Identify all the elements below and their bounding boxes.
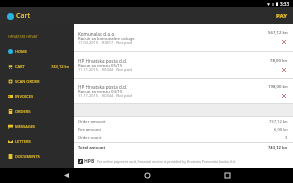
- button[interactable]: PAY: [270, 8, 293, 24]
- button[interactable]: HOME: [0, 44, 74, 59]
- button[interactable]: HP Hrvatska posta d.d.: [74, 52, 293, 78]
- staticText: 567,12 kn: [268, 29, 288, 35]
- staticText: 6,00 kn: [274, 127, 288, 133]
- staticText: INVOICES: [15, 94, 34, 99]
- staticText: 78,00 kn: [270, 57, 288, 63]
- staticText: 17.03.2015. R3617 Not paid: [78, 40, 133, 45]
- button[interactable]: DOCUMENTS: [0, 149, 74, 164]
- button[interactable]: App icon: [0, 11, 37, 21]
- button[interactable]: Recent apps: [212, 168, 242, 183]
- button[interactable]: Komunalac d.o.o.: [74, 24, 293, 51]
- staticText: ORDERS: [15, 109, 31, 114]
- button[interactable]: Remove item: [280, 92, 288, 100]
- other: App icon: [7, 13, 14, 20]
- button[interactable]: HP Hrvatska posta d.d.: [74, 79, 293, 103]
- staticText: LETTERS: [15, 139, 31, 144]
- button[interactable]: Home: [132, 168, 162, 183]
- staticText: Total amount: [78, 145, 106, 151]
- staticText: For online payment card, financial servi…: [97, 159, 236, 164]
- button[interactable]: INVOICES: [0, 89, 74, 104]
- staticText: HPB: [84, 158, 95, 165]
- staticText: Racun za mrezu 03/15: [78, 88, 123, 94]
- button[interactable]: Remove item: [280, 66, 288, 74]
- staticText: Order amount: [78, 119, 106, 125]
- staticText: 743,12 kn: [51, 64, 70, 69]
- staticText: Cart: [16, 11, 31, 21]
- staticText: PAY: [276, 12, 287, 20]
- button[interactable]: Remove item: [280, 38, 288, 46]
- staticText: 743,12 kn: [268, 145, 288, 151]
- button[interactable]: SCAN ORDER: [0, 74, 74, 89]
- staticText: 11.11.2015. K0344 Not paid: [78, 67, 133, 72]
- button[interactable]: MESSAGES: [0, 119, 74, 134]
- staticText: Fee amount: [78, 127, 101, 133]
- button[interactable]: Back: [51, 168, 81, 183]
- staticText: MESSAGES: [15, 124, 36, 129]
- button[interactable]: ORDERS: [0, 104, 74, 119]
- staticText: SCAN ORDER: [15, 79, 40, 84]
- staticText: Komunalac d.o.o.: [78, 31, 116, 37]
- staticText: 3: [285, 135, 288, 141]
- staticText: HOME: [15, 49, 27, 54]
- staticText: CART: [15, 64, 25, 69]
- staticText: HP Hrvatska posta d.d.: [78, 84, 128, 90]
- staticText: Order count: [78, 135, 102, 141]
- staticText: 11.11.2015. K0344 Not paid: [78, 93, 133, 98]
- staticText: HP Hrvatska posta d.d.: [78, 58, 128, 64]
- button[interactable]: LETTERS: [0, 134, 74, 149]
- button[interactable]: CART: [0, 59, 74, 74]
- staticText: Racun za komunalne usluge: [78, 35, 135, 41]
- staticText: 737,12 kn: [269, 119, 288, 125]
- staticText: HRVATSKI HRVAT: [8, 34, 38, 39]
- staticText: DOCUMENTS: [15, 154, 40, 159]
- staticText: Racun za mrezu 05/15: [78, 62, 123, 68]
- staticText: 198,00 kn: [268, 83, 288, 89]
- staticText: 3:33: [280, 1, 290, 7]
